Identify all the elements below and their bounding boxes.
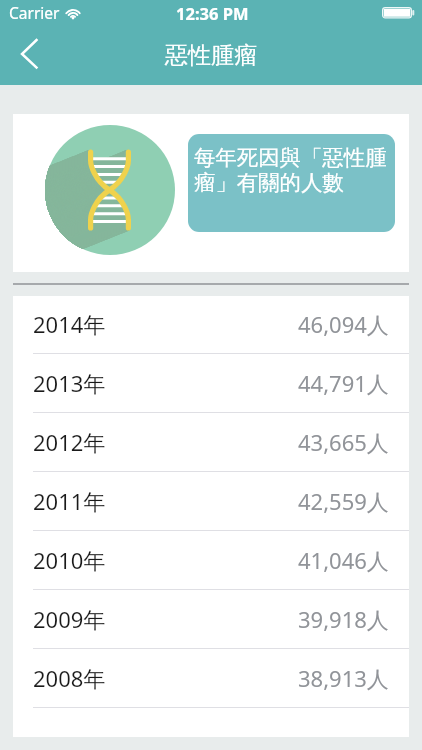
button[interactable]: 2008年: [13, 649, 409, 707]
staticText: 2014年: [33, 309, 106, 339]
staticText: 38,913人: [298, 663, 389, 693]
staticText: Carrier: [9, 2, 60, 23]
button[interactable]: 2011年: [13, 472, 409, 530]
staticText: 2011年: [33, 486, 106, 516]
button[interactable]: 2012年: [13, 413, 409, 471]
staticText: 每年死因與「惡性腫瘤」有關的人數: [194, 144, 390, 196]
staticText: 2013年: [33, 368, 106, 398]
staticText: 惡性腫瘤: [165, 41, 257, 70]
staticText: 44,791人: [298, 368, 389, 398]
staticText: 43,665人: [298, 427, 389, 457]
staticText: 2009年: [33, 604, 106, 634]
staticText: 46,094人: [298, 309, 389, 339]
staticText: 12:36 PM: [176, 2, 249, 24]
button[interactable]: 2014年: [13, 296, 409, 353]
staticText: 39,918人: [298, 604, 389, 634]
button[interactable]: 2009年: [13, 590, 409, 648]
staticText: 42,559人: [298, 486, 389, 516]
button[interactable]: 2013年: [13, 354, 409, 412]
staticText: 41,046人: [298, 545, 389, 575]
staticText: 2008年: [33, 663, 106, 693]
button[interactable]: 2010年: [13, 531, 409, 589]
button[interactable]: Back: [14, 36, 50, 72]
staticText: 2010年: [33, 545, 106, 575]
staticText: 2012年: [33, 427, 106, 457]
